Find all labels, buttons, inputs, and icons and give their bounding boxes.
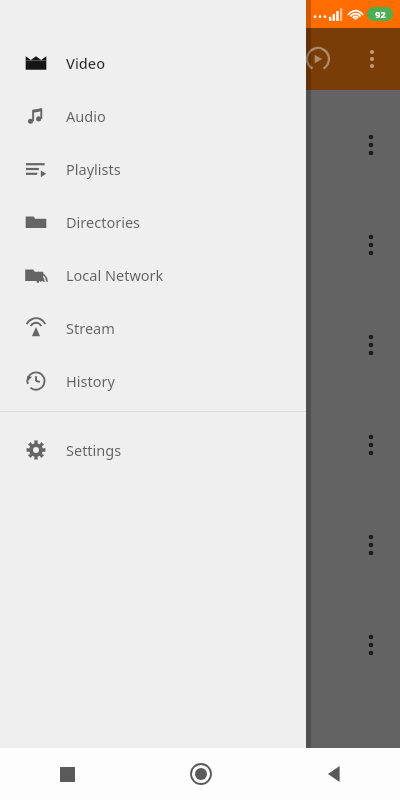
button[interactable]: Playlists	[0, 142, 306, 195]
staticText: Playlists	[66, 159, 121, 179]
staticText: Settings	[66, 440, 122, 460]
button[interactable]: Video	[0, 36, 306, 89]
staticText: Video	[66, 53, 106, 73]
button[interactable]: More options	[354, 41, 390, 77]
staticText: History	[66, 371, 115, 391]
staticText: ush!	[308, 764, 334, 782]
button[interactable]: Settings	[0, 423, 306, 476]
staticText: Local Network	[66, 265, 164, 285]
staticText: 92	[375, 8, 386, 20]
button[interactable]: Audio	[0, 89, 306, 142]
button[interactable]: Refresh	[300, 41, 336, 77]
button[interactable]: Back	[267, 748, 400, 800]
button[interactable]: Recent apps	[0, 748, 134, 800]
button[interactable]: Stream	[0, 301, 306, 354]
button[interactable]: Local Network	[0, 248, 306, 301]
button[interactable]: History	[0, 354, 306, 407]
button[interactable]: Home	[134, 748, 267, 800]
button[interactable]: Directories	[0, 195, 306, 248]
staticText: Audio	[66, 106, 106, 126]
staticText: Directories	[66, 212, 141, 232]
staticText: Stream	[66, 318, 115, 338]
